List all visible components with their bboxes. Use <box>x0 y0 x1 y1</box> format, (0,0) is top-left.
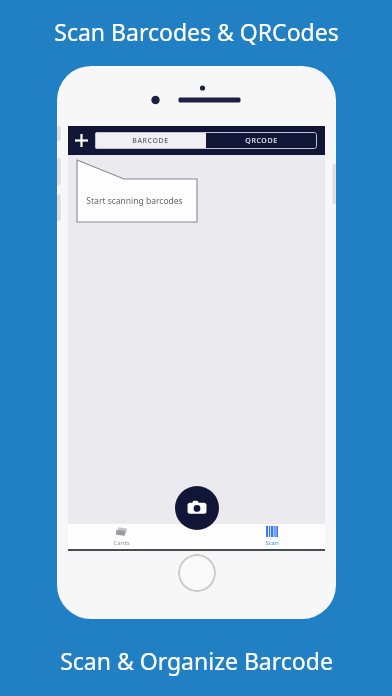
button[interactable]: Add <box>68 126 95 155</box>
button[interactable]: Cards <box>93 524 149 549</box>
staticText: Scan <box>265 539 279 547</box>
button[interactable]: Home <box>178 554 216 592</box>
button[interactable]: BARCODE <box>95 132 206 149</box>
staticText: Start scanning barcodes <box>86 195 183 207</box>
button[interactable]: QRCODE <box>206 132 317 149</box>
button[interactable]: Scan with camera <box>175 486 219 530</box>
staticText: QRCODE <box>245 136 278 146</box>
staticText: Scan Barcodes & QRCodes <box>54 16 339 47</box>
staticText: BARCODE <box>132 136 169 146</box>
button[interactable]: Scan <box>244 524 300 549</box>
staticText: Cards <box>113 539 130 547</box>
staticText: Scan & Organize Barcode <box>60 645 333 676</box>
